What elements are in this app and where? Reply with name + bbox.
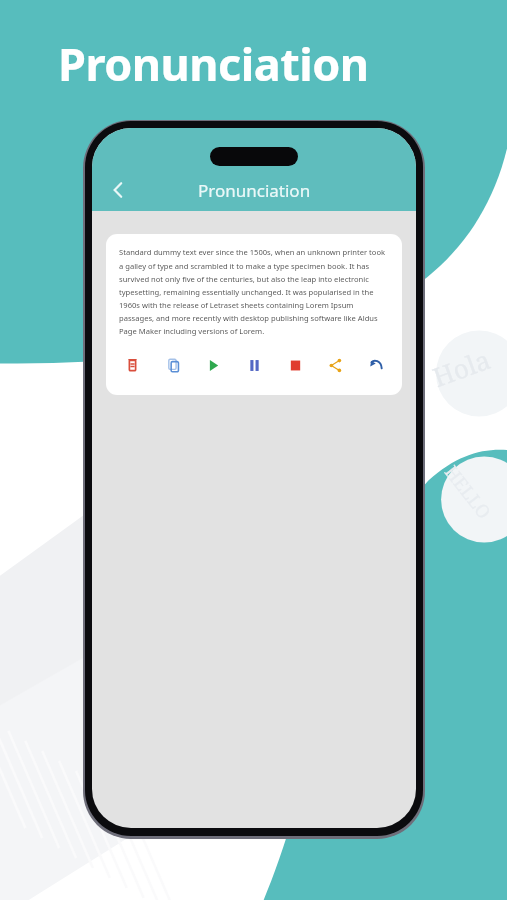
button[interactable]: Pause: [243, 354, 265, 376]
button[interactable]: Stop: [284, 354, 306, 376]
button[interactable]: Copy: [162, 354, 184, 376]
staticText: HELLO: [439, 460, 497, 525]
staticText: Pronunciation: [198, 179, 311, 202]
staticText: Hola: [428, 341, 495, 394]
button[interactable]: Play: [202, 354, 224, 376]
staticText: Standard dummy text ever since the 1500s…: [119, 247, 389, 336]
button[interactable]: Undo: [365, 354, 387, 376]
staticText: Pronunciation: [58, 33, 369, 94]
button[interactable]: Back: [100, 172, 136, 208]
button[interactable]: Share: [324, 354, 346, 376]
button[interactable]: Clear text: [121, 354, 143, 376]
